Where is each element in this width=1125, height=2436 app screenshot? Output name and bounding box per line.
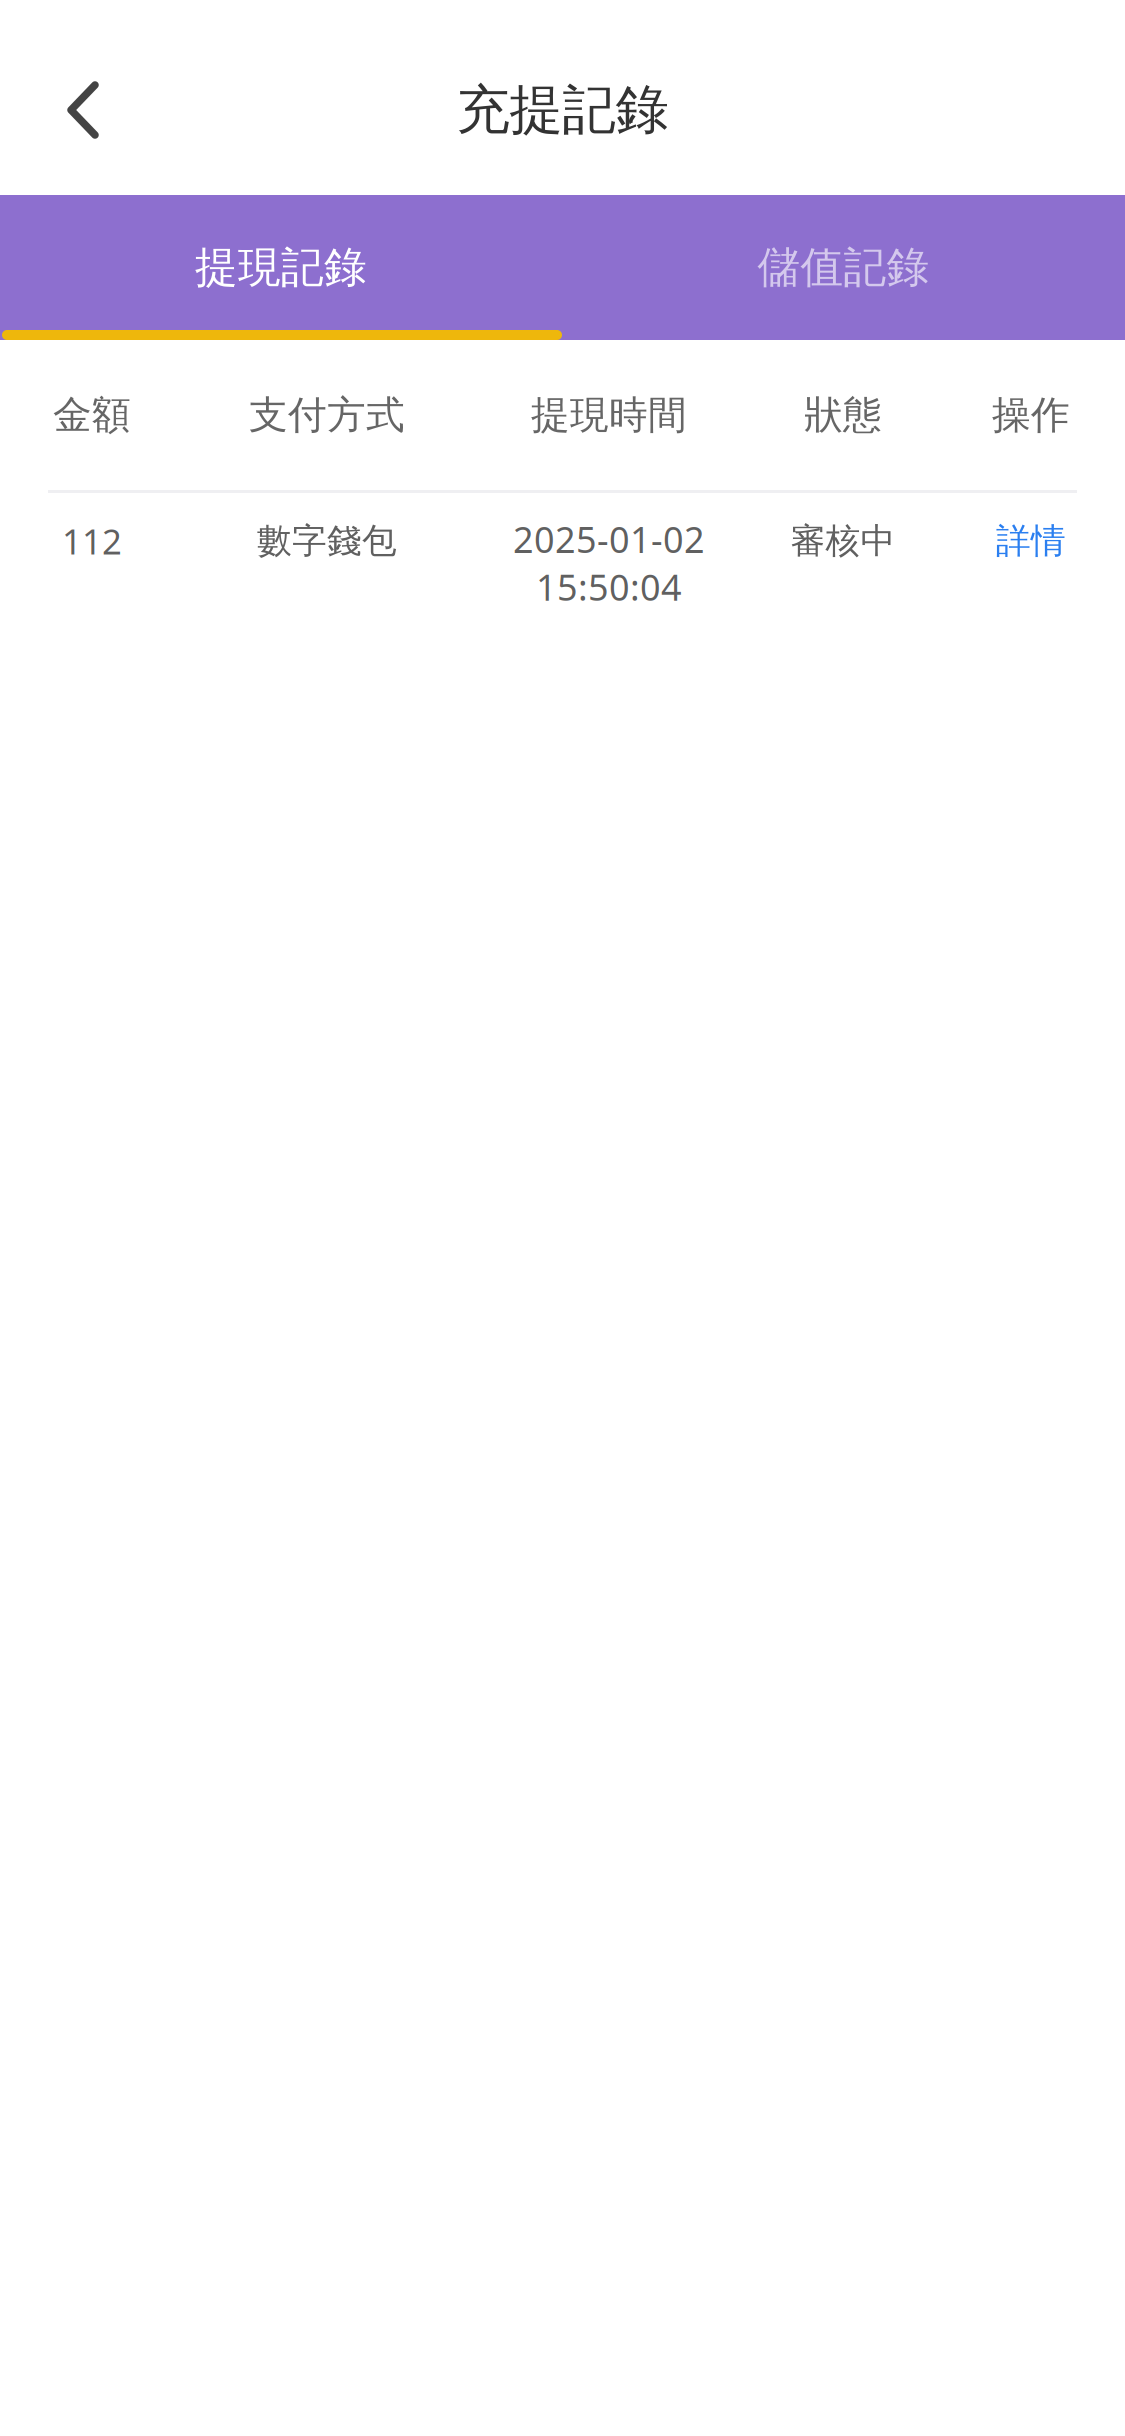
staticText: 狀態 [804, 391, 882, 439]
staticText: 數字錢包 [257, 520, 397, 562]
staticText: 112 [62, 518, 122, 564]
staticText: 充提記錄 [456, 77, 668, 143]
button[interactable]: 提現記錄 [0, 195, 562, 340]
staticText: 15:50:04 [536, 563, 682, 611]
staticText: 操作 [992, 391, 1070, 439]
staticText: 提現時間 [531, 391, 687, 439]
button[interactable]: 儲值記錄 [562, 195, 1125, 340]
staticText: 支付方式 [249, 391, 405, 439]
button[interactable]: Back [28, 55, 138, 165]
button[interactable]: 詳情 [941, 496, 1121, 586]
staticText: 詳情 [996, 520, 1066, 562]
staticText: 儲值記錄 [757, 241, 929, 294]
staticText: 審核中 [790, 520, 895, 562]
staticText: 金額 [53, 391, 131, 439]
staticText: 提現記錄 [195, 241, 367, 294]
staticText: 2025-01-02 [513, 515, 705, 563]
